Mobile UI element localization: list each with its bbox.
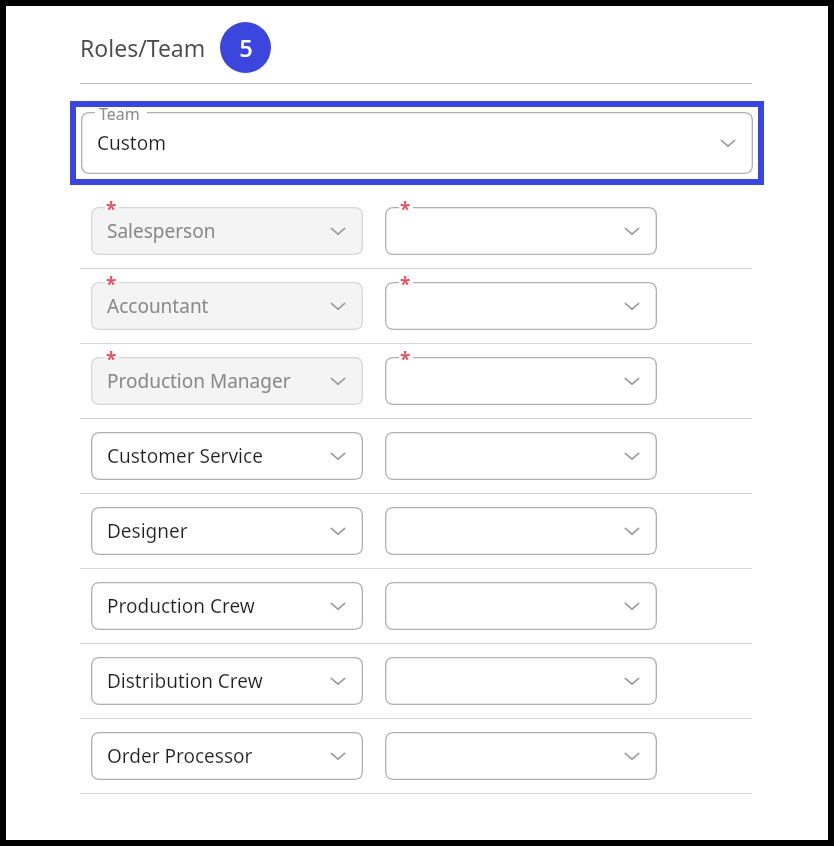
- staticText: *: [106, 196, 117, 222]
- staticText: 5: [239, 32, 253, 63]
- staticText: Distribution Crew: [107, 668, 263, 694]
- other: Open dropdown: [327, 670, 349, 692]
- other: Open dropdown: [327, 520, 349, 542]
- button[interactable]: Team: [81, 112, 753, 174]
- other: Open dropdown: [621, 370, 643, 392]
- button[interactable]: Designer: [91, 507, 363, 555]
- staticText: Roles/Team: [80, 32, 206, 63]
- other: Open dropdown: [621, 220, 643, 242]
- button[interactable]: *: [91, 207, 363, 255]
- button[interactable]: Open dropdown: [385, 657, 657, 705]
- staticText: Production Crew: [107, 593, 255, 619]
- other: Open dropdown: [327, 445, 349, 467]
- other: Open dropdown: [621, 520, 643, 542]
- other: Open dropdown: [327, 220, 349, 242]
- button[interactable]: 5: [220, 22, 271, 73]
- staticText: Team: [99, 103, 140, 125]
- other: Open dropdown: [327, 370, 349, 392]
- other: Open dropdown: [327, 745, 349, 767]
- staticText: Designer: [107, 518, 188, 544]
- other: Open dropdown: [327, 295, 349, 317]
- staticText: Salesperson: [107, 218, 216, 244]
- button[interactable]: *: [385, 357, 657, 405]
- staticText: Accountant: [107, 293, 209, 319]
- button[interactable]: Distribution Crew: [91, 657, 363, 705]
- button[interactable]: Open dropdown: [385, 432, 657, 480]
- button[interactable]: *: [91, 357, 363, 405]
- staticText: Production Manager: [107, 368, 291, 394]
- other: Open dropdown: [327, 595, 349, 617]
- other: Open dropdown: [621, 295, 643, 317]
- staticText: *: [106, 346, 117, 372]
- button[interactable]: *: [385, 282, 657, 330]
- staticText: *: [400, 271, 411, 297]
- staticText: Order Processor: [107, 743, 253, 769]
- staticText: *: [400, 196, 411, 222]
- staticText: *: [106, 271, 117, 297]
- button[interactable]: *: [385, 207, 657, 255]
- other: Open dropdown: [621, 670, 643, 692]
- button[interactable]: *: [91, 282, 363, 330]
- button[interactable]: Open dropdown: [385, 732, 657, 780]
- staticText: Customer Service: [107, 443, 263, 469]
- other: Open dropdown: [621, 445, 643, 467]
- button[interactable]: Order Processor: [91, 732, 363, 780]
- staticText: *: [400, 346, 411, 372]
- button[interactable]: Customer Service: [91, 432, 363, 480]
- staticText: Custom: [97, 130, 166, 156]
- other: Open dropdown: [717, 132, 739, 154]
- button[interactable]: Production Crew: [91, 582, 363, 630]
- button[interactable]: Open dropdown: [385, 507, 657, 555]
- other: Open dropdown: [621, 595, 643, 617]
- button[interactable]: Open dropdown: [385, 582, 657, 630]
- other: Open dropdown: [621, 745, 643, 767]
